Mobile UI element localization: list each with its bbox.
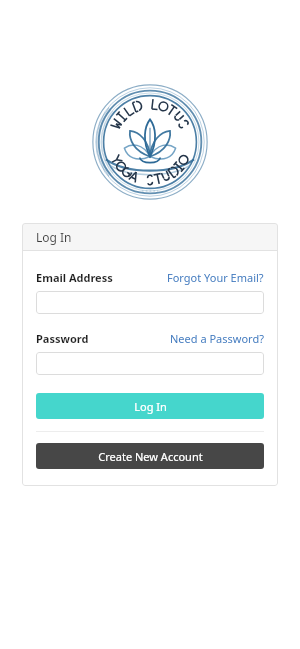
staticText: Log In (134, 399, 167, 414)
button[interactable]: Log In (36, 393, 264, 419)
button[interactable]: Forgot Your Email? (167, 270, 264, 285)
button[interactable] (36, 352, 264, 375)
button[interactable]: Create New Account (36, 443, 264, 469)
staticText: Create New Account (98, 449, 203, 464)
button[interactable]: Need a Password? (170, 331, 264, 346)
button[interactable] (36, 291, 264, 314)
other: Wild Lotus Yoga Studio logo (92, 84, 208, 200)
staticText: Password (36, 331, 89, 346)
staticText: Log In (36, 229, 72, 245)
staticText: Need a Password? (170, 331, 264, 346)
staticText: Email Address (36, 270, 113, 285)
staticText: Forgot Your Email? (167, 270, 264, 285)
